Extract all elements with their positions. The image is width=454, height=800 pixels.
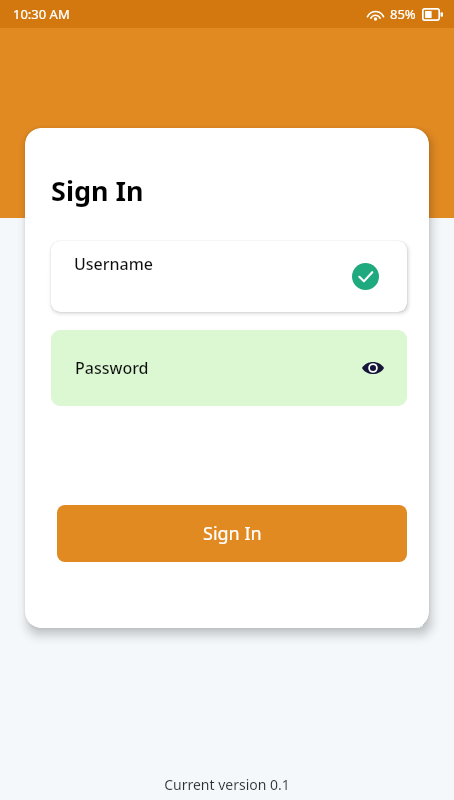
staticText: Sign In (203, 521, 262, 546)
staticText: Password (75, 357, 149, 379)
staticText: Username (74, 253, 154, 275)
button[interactable]: Show password (362, 360, 384, 376)
staticText: Current version 0.1 (164, 775, 290, 794)
staticText: 10:30 AM (13, 5, 70, 23)
button[interactable]: Username valid (352, 263, 379, 290)
button[interactable]: Password (51, 330, 407, 406)
staticText: Sign In (51, 172, 144, 209)
button[interactable]: Username (51, 241, 407, 312)
button[interactable]: Sign In (57, 505, 407, 562)
staticText: 85% (390, 5, 416, 23)
